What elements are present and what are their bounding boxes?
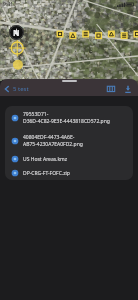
staticText: AB75-4230A7EA0FD2.png: [23, 141, 83, 148]
staticText: 9:41: [3, 1, 13, 8]
staticText: 5 test: [13, 85, 29, 93]
button[interactable]: 40804EDF-4473-4A6E-: [5, 129, 133, 152]
staticText: DP-CRG-FT-FOFC.zip: [23, 170, 70, 177]
staticText: 40804EDF-4473-4A6E-: [23, 134, 75, 141]
button[interactable]: Compass: [9, 25, 24, 40]
staticText: 79553D71-: [23, 111, 49, 118]
button[interactable]: DP-CRG-FT-FOFC.zip: [5, 166, 133, 180]
button[interactable]: Map layers: [104, 82, 118, 96]
button[interactable]: Download: [121, 82, 135, 96]
button[interactable]: 79553D71-: [5, 106, 133, 129]
staticText: US Host Areas.kmz: [23, 156, 68, 163]
staticText: D36D-4C82-9E3E-4443818CD572.png: [23, 118, 110, 125]
staticText: N: [13, 27, 20, 38]
button[interactable]: 5 test: [0, 85, 33, 93]
button[interactable]: US Host Areas.kmz: [5, 152, 133, 166]
